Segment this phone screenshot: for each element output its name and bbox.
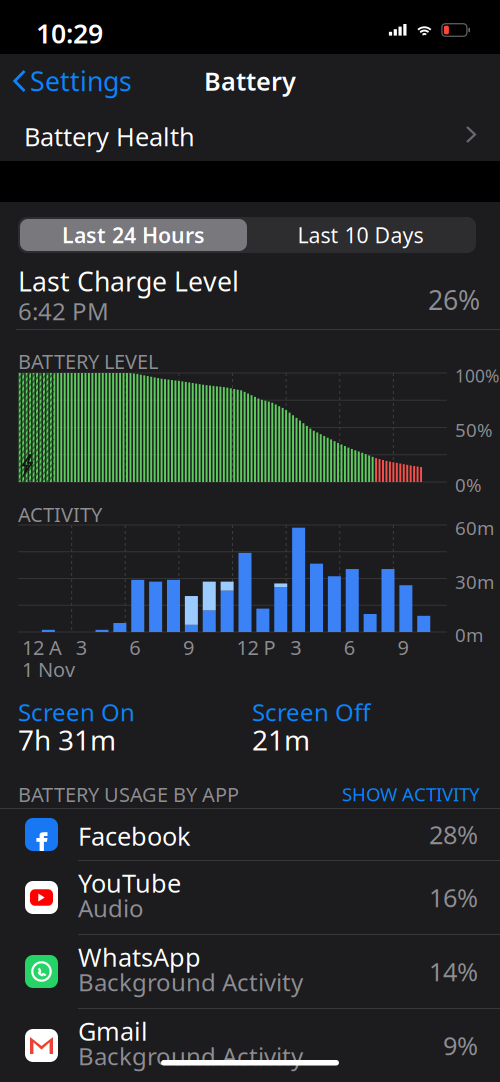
staticText: 21m xyxy=(252,721,310,758)
staticText: 9% xyxy=(443,1029,478,1062)
staticText: 50% xyxy=(455,417,493,442)
staticText: 12 A xyxy=(22,634,62,661)
staticText: 28% xyxy=(429,818,478,851)
staticText: 3 xyxy=(76,634,87,661)
staticText: Background Activity xyxy=(78,966,303,998)
staticText: YouTube xyxy=(78,866,181,900)
staticText: 26% xyxy=(428,282,480,317)
button[interactable]: YouTube xyxy=(0,861,500,934)
staticText: Screen On xyxy=(18,696,135,728)
staticText: 16% xyxy=(429,881,478,914)
staticText: 6 xyxy=(344,634,355,661)
staticText: Audio xyxy=(78,892,144,924)
staticText: 3 xyxy=(290,634,301,661)
staticText: BATTERY LEVEL xyxy=(18,348,158,375)
staticText: Last Charge Level xyxy=(18,263,239,299)
staticText: Gmail xyxy=(78,1014,148,1048)
staticText: 9 xyxy=(183,634,194,661)
staticText: Facebook xyxy=(78,819,191,853)
staticText: 10:29 xyxy=(36,15,103,51)
staticText: 12 P xyxy=(236,634,275,661)
staticText: 0% xyxy=(455,472,482,497)
staticText: 1 Nov xyxy=(22,656,75,683)
staticText: Battery xyxy=(204,64,296,98)
staticText: 14% xyxy=(429,955,478,988)
staticText: BATTERY USAGE BY APP xyxy=(18,781,239,808)
staticText: 100% xyxy=(455,364,499,387)
button[interactable]: Last 24 Hours xyxy=(20,219,247,251)
staticText: WhatsApp xyxy=(78,940,201,974)
button[interactable]: Battery Health xyxy=(0,108,500,161)
staticText: 30m xyxy=(455,569,494,594)
button[interactable]: Gmail xyxy=(0,1009,500,1082)
button[interactable]: Facebook xyxy=(0,809,500,860)
staticText: Last 10 Days xyxy=(297,221,423,249)
staticText: Background Activity xyxy=(78,1040,303,1072)
staticText: 0m xyxy=(455,622,483,647)
staticText: 6:42 PM xyxy=(18,295,109,327)
staticText: SHOW ACTIVITY xyxy=(342,782,480,806)
staticText: Screen Off xyxy=(252,696,371,728)
button[interactable]: SHOW ACTIVITY xyxy=(0,785,480,803)
staticText: Battery Health xyxy=(24,119,195,153)
staticText: ACTIVITY xyxy=(18,501,102,528)
staticText: 9 xyxy=(397,634,408,661)
staticText: 60m xyxy=(455,515,494,540)
staticText: Last 24 Hours xyxy=(62,221,205,249)
staticText: 6 xyxy=(129,634,140,661)
button[interactable]: Settings xyxy=(0,54,142,108)
staticText: Settings xyxy=(30,63,132,99)
button[interactable]: WhatsApp xyxy=(0,935,500,1008)
staticText: 7h 31m xyxy=(18,721,116,758)
button[interactable]: Last 10 Days xyxy=(247,219,474,251)
